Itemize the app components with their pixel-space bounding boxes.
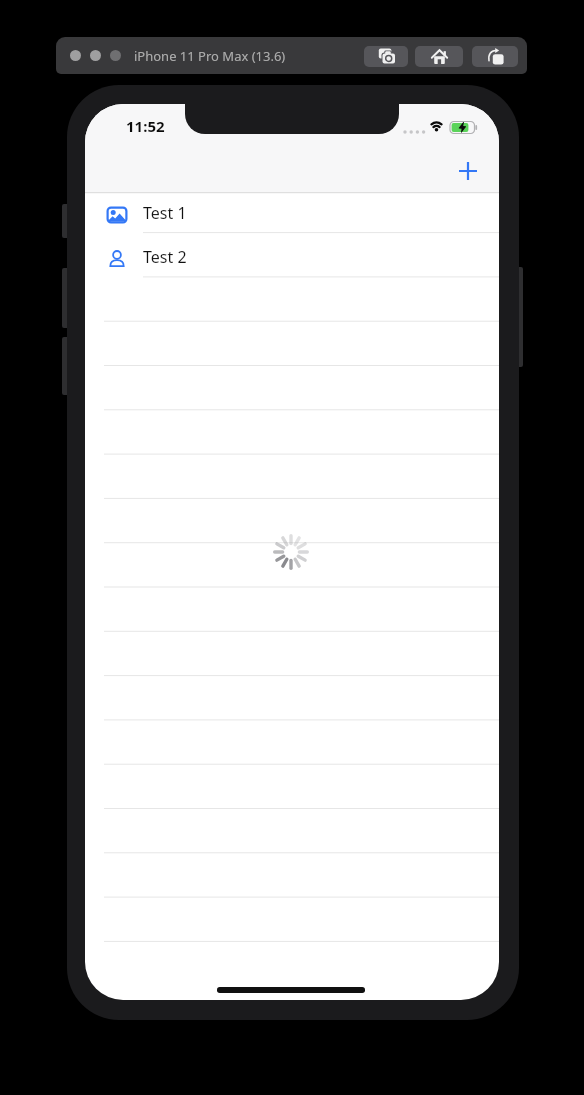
staticText: Test 2 bbox=[143, 246, 187, 268]
button[interactable] bbox=[364, 46, 408, 67]
button[interactable]: Test 1 bbox=[85, 193, 499, 233]
button[interactable] bbox=[453, 156, 483, 186]
staticText: 11:52 bbox=[126, 116, 165, 136]
button[interactable] bbox=[415, 46, 463, 67]
button[interactable]: Test 2 bbox=[85, 233, 499, 277]
button[interactable] bbox=[472, 46, 518, 67]
staticText: Test 1 bbox=[143, 202, 187, 224]
staticText: iPhone 11 Pro Max (13.6) bbox=[134, 47, 286, 65]
